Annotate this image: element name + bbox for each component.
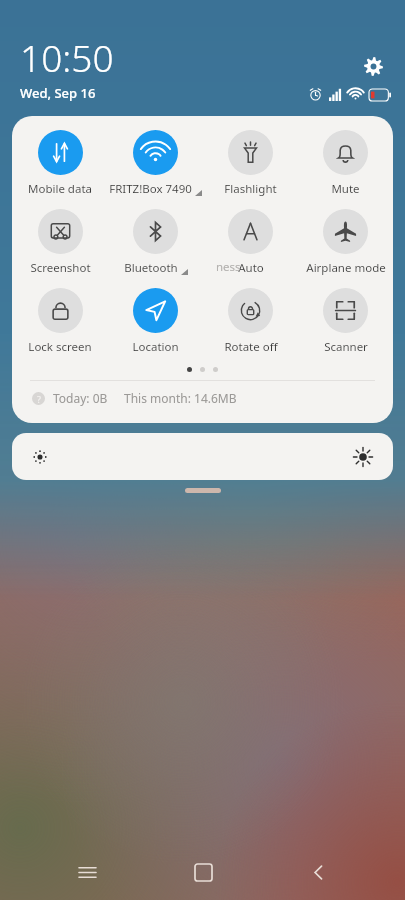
button[interactable]: Flashlight xyxy=(203,130,298,197)
staticText: Today: 0B xyxy=(53,390,108,406)
button[interactable]: Rotate off xyxy=(203,288,298,355)
button[interactable]: FRITZ!Box 7490 xyxy=(108,130,203,197)
staticText: Airplane mode xyxy=(306,260,386,276)
staticText: Mute xyxy=(331,181,360,197)
staticText: ? xyxy=(37,393,41,405)
button[interactable]: ? xyxy=(12,381,393,415)
button[interactable]: Recents xyxy=(59,844,115,900)
button[interactable]: Lock screen xyxy=(12,288,108,355)
button[interactable]: Bluetooth xyxy=(108,209,203,276)
staticText: Location xyxy=(132,339,179,355)
button[interactable]: Airplane mode xyxy=(298,209,393,276)
button[interactable]: Settings xyxy=(353,46,393,86)
staticText: Wed, Sep 16 xyxy=(20,84,96,102)
button[interactable]: Auto xyxy=(203,209,298,276)
staticText: Bluetooth xyxy=(124,260,178,276)
staticText: Scanner xyxy=(324,339,368,355)
staticText: Rotate off xyxy=(224,339,278,355)
button[interactable]: Mute xyxy=(298,130,393,197)
button[interactable]: Brightness xyxy=(12,433,393,480)
staticText: This month: 14.6MB xyxy=(124,390,237,406)
button[interactable]: Mobile data xyxy=(12,130,108,197)
staticText: Flashlight xyxy=(224,181,277,197)
staticText: Screenshot xyxy=(30,260,91,276)
button[interactable]: Location xyxy=(108,288,203,355)
staticText: FRITZ!Box 7490 xyxy=(109,181,192,197)
button[interactable]: Screenshot xyxy=(12,209,108,276)
staticText: ness xyxy=(216,259,241,275)
button[interactable]: Home xyxy=(175,844,231,900)
staticText: Auto xyxy=(238,260,264,276)
button[interactable]: Back xyxy=(290,844,346,900)
staticText: Lock screen xyxy=(28,339,92,355)
staticText: 10:50 xyxy=(20,32,114,82)
button[interactable]: Scanner xyxy=(298,288,393,355)
staticText: Mobile data xyxy=(28,181,92,197)
